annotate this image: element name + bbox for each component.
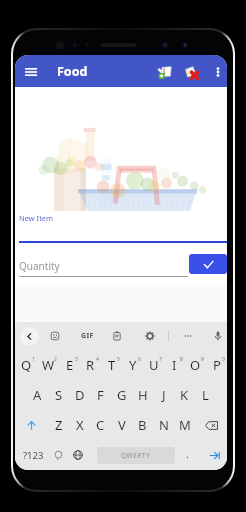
staticText: 8 xyxy=(180,356,183,363)
staticText: P xyxy=(213,356,221,374)
button[interactable]: U xyxy=(143,350,164,380)
button[interactable]: R xyxy=(80,350,101,380)
staticText: F xyxy=(97,386,104,404)
button[interactable]: T xyxy=(101,350,122,380)
staticText: 1 xyxy=(32,356,35,363)
staticText: 6 xyxy=(138,356,141,363)
staticText: W xyxy=(42,356,55,374)
staticText: G xyxy=(117,386,127,404)
button[interactable]: F xyxy=(90,380,111,410)
button[interactable]: P xyxy=(206,350,227,380)
staticText: K xyxy=(180,386,189,404)
button[interactable]: X xyxy=(69,410,90,440)
button[interactable]: B xyxy=(132,410,153,440)
staticText: 2 xyxy=(54,356,57,363)
button[interactable]: H xyxy=(132,380,153,410)
button[interactable]: V xyxy=(111,410,132,440)
staticText: D xyxy=(75,386,85,404)
staticText: N xyxy=(159,416,169,434)
staticText: Quantity xyxy=(19,259,60,273)
button[interactable]: More xyxy=(179,327,197,345)
staticText: ?123 xyxy=(23,449,44,462)
button[interactable]: Backspace xyxy=(195,410,227,440)
button[interactable]: GIF xyxy=(77,326,97,346)
button[interactable]: Enter xyxy=(205,440,223,470)
staticText: J xyxy=(162,386,166,404)
button[interactable]: S xyxy=(48,380,69,410)
button[interactable]: J xyxy=(153,380,174,410)
button[interactable]: New item xyxy=(155,62,174,81)
staticText: R xyxy=(86,356,95,374)
button[interactable]: ?123 xyxy=(19,440,48,470)
staticText: B xyxy=(138,416,147,434)
staticText: 9 xyxy=(201,356,204,363)
staticText: U xyxy=(149,356,159,374)
button[interactable]: Shift xyxy=(15,410,48,440)
staticText: 0 xyxy=(222,356,225,363)
staticText: O xyxy=(190,356,201,374)
button[interactable]: L xyxy=(195,380,216,410)
staticText: I xyxy=(172,356,177,374)
button[interactable]: Q xyxy=(15,350,37,380)
staticText: H xyxy=(138,386,148,404)
button[interactable]: G xyxy=(111,380,132,410)
staticText: A xyxy=(33,386,42,404)
staticText: V xyxy=(118,416,126,434)
button[interactable]: Add item xyxy=(189,254,227,274)
staticText: T xyxy=(108,356,116,374)
button[interactable]: Stickers xyxy=(46,327,64,345)
button[interactable]: Voice input xyxy=(209,327,227,345)
button[interactable]: E xyxy=(59,350,80,380)
staticText: Y xyxy=(129,356,137,374)
staticText: Q xyxy=(21,356,32,374)
staticText: Z xyxy=(55,416,63,434)
button[interactable]: I xyxy=(164,350,185,380)
button[interactable]: Emoji xyxy=(49,440,67,470)
button[interactable]: . xyxy=(178,440,196,470)
button[interactable]: Change language xyxy=(69,440,87,470)
button[interactable]: O xyxy=(185,350,206,380)
staticText: E xyxy=(66,356,74,374)
staticText: GIF xyxy=(81,331,94,341)
staticText: . xyxy=(186,447,189,461)
button[interactable]: Delete list xyxy=(181,62,200,81)
staticText: M xyxy=(179,416,191,434)
button[interactable]: Clipboard xyxy=(108,327,126,345)
button[interactable]: C xyxy=(90,410,111,440)
button[interactable]: Y xyxy=(122,350,143,380)
button[interactable]: N xyxy=(153,410,174,440)
button[interactable]: QWERTY xyxy=(97,447,175,464)
button[interactable]: K xyxy=(174,380,195,410)
staticText: C xyxy=(96,416,105,434)
staticText: 5 xyxy=(117,356,120,363)
staticText: 7 xyxy=(159,356,162,363)
button[interactable]: Z xyxy=(48,410,69,440)
staticText: 4 xyxy=(96,356,99,363)
staticText: QWERTY xyxy=(121,451,151,460)
button[interactable]: More options xyxy=(208,62,227,81)
staticText: New Item xyxy=(19,213,54,223)
button[interactable]: W xyxy=(37,350,59,380)
staticText: 3 xyxy=(75,356,78,363)
staticText: X xyxy=(76,416,84,434)
button[interactable]: Open navigation menu xyxy=(20,61,41,82)
button[interactable]: A xyxy=(27,380,48,410)
button[interactable]: Settings xyxy=(141,327,159,345)
button[interactable]: M xyxy=(174,410,195,440)
button[interactable]: Back xyxy=(20,327,39,346)
staticText: S xyxy=(55,386,63,404)
staticText: L xyxy=(202,386,209,404)
button[interactable]: D xyxy=(69,380,90,410)
staticText: Food xyxy=(57,63,88,80)
